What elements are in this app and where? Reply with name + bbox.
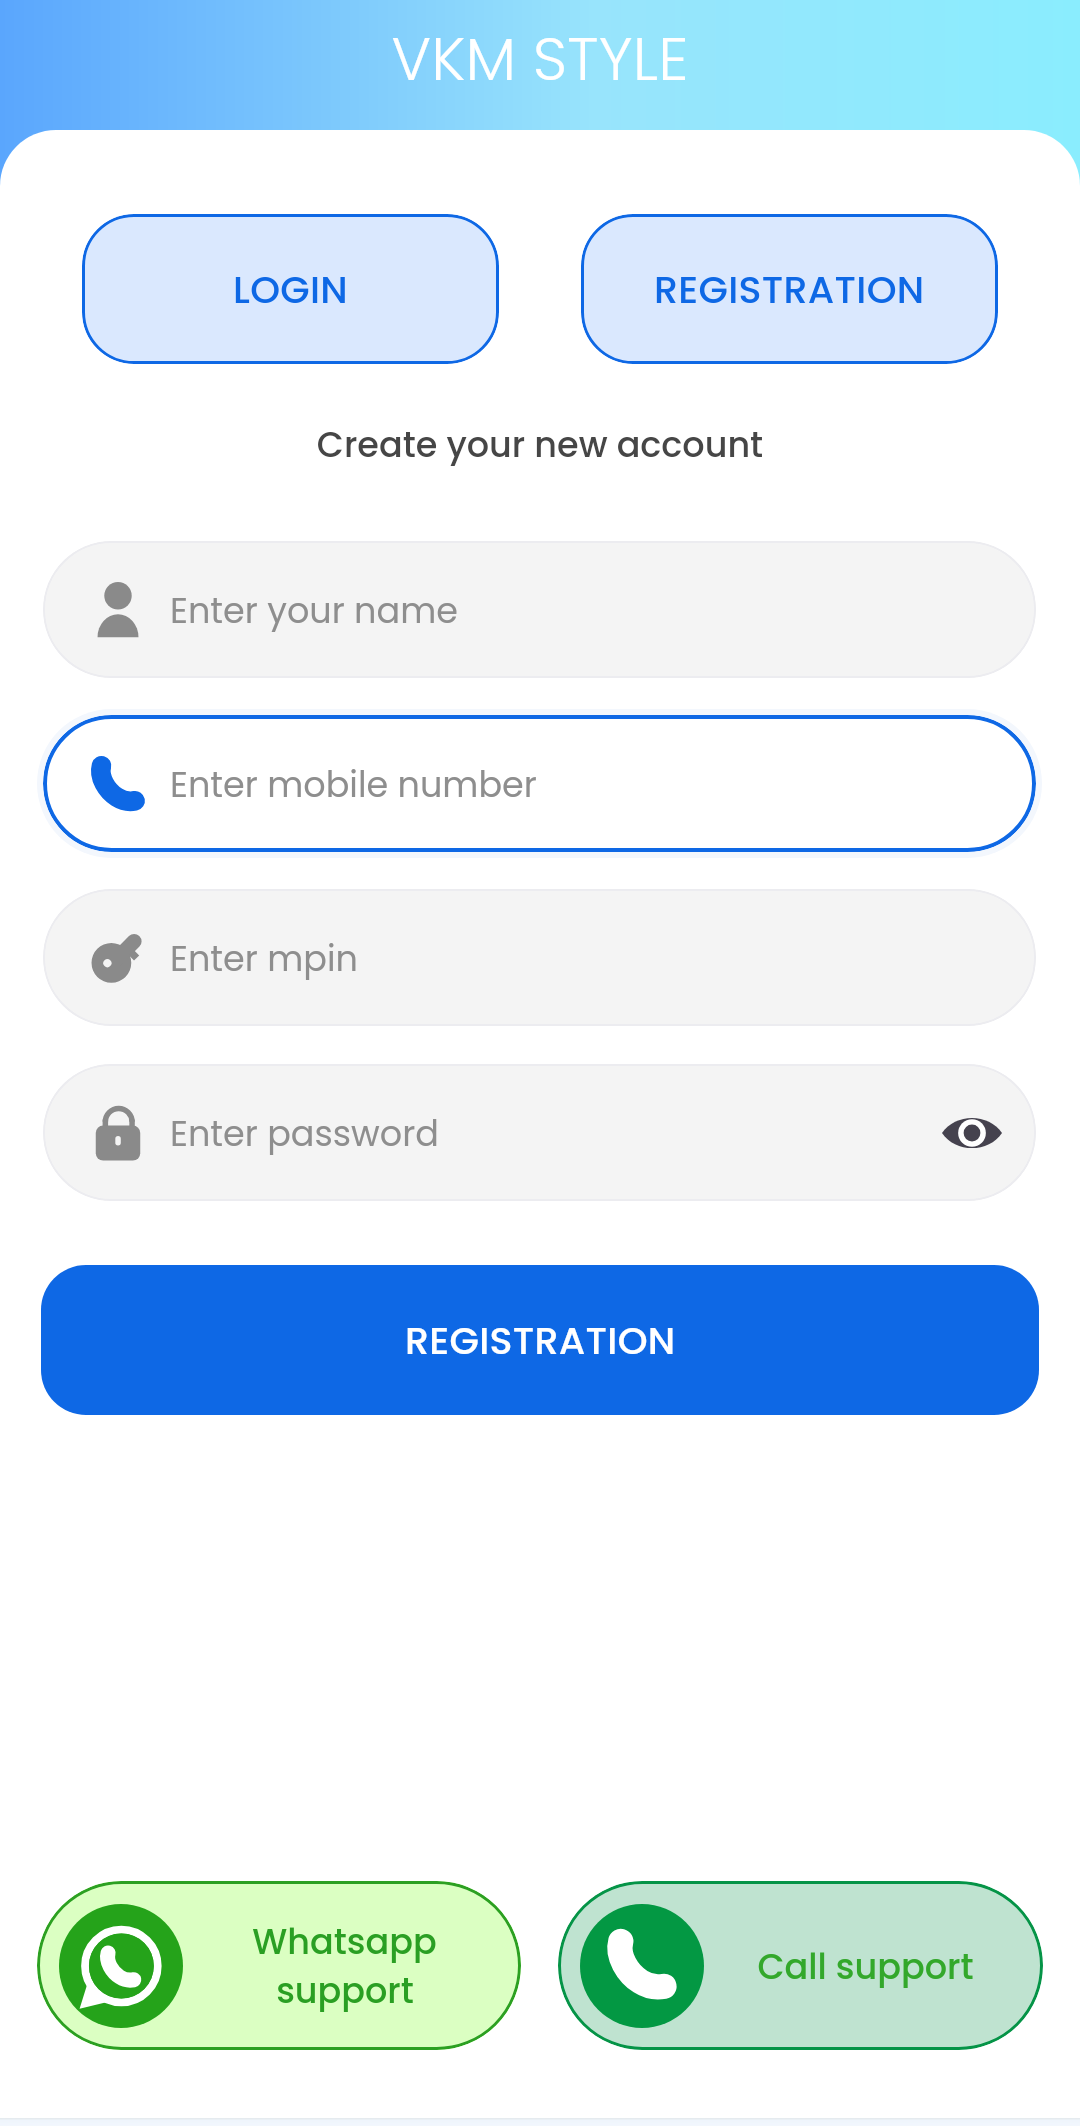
other: Whatsapp support [59, 1904, 183, 2028]
button[interactable]: REGISTRATION [581, 214, 998, 364]
other: Call support [580, 1904, 704, 2028]
button[interactable]: Enter mobile number [43, 715, 1036, 852]
staticText: REGISTRATION [654, 263, 925, 316]
button[interactable]: Whatsapp support [37, 1881, 521, 2050]
staticText: Enter your name [170, 586, 458, 635]
button[interactable]: LOGIN [82, 214, 499, 364]
staticText: Call support [757, 1942, 974, 1991]
button[interactable]: Call support [558, 1881, 1043, 2050]
staticText: Create your new account [0, 420, 1080, 469]
staticText: support [276, 1966, 414, 2015]
staticText: LOGIN [233, 263, 348, 316]
staticText: Whatsapp [252, 1917, 437, 1966]
button[interactable]: REGISTRATION [41, 1265, 1039, 1415]
button[interactable]: Enter your name [43, 541, 1036, 678]
staticText: Enter mobile number [170, 760, 537, 809]
button[interactable]: Show password [926, 1087, 1018, 1179]
button[interactable]: Enter mpin [43, 889, 1036, 1026]
staticText: VKM STYLE [0, 17, 1080, 101]
staticText: REGISTRATION [405, 1314, 676, 1367]
button[interactable]: Enter password [43, 1064, 1036, 1201]
staticText: Enter mpin [170, 934, 358, 983]
staticText: Enter password [170, 1109, 439, 1158]
